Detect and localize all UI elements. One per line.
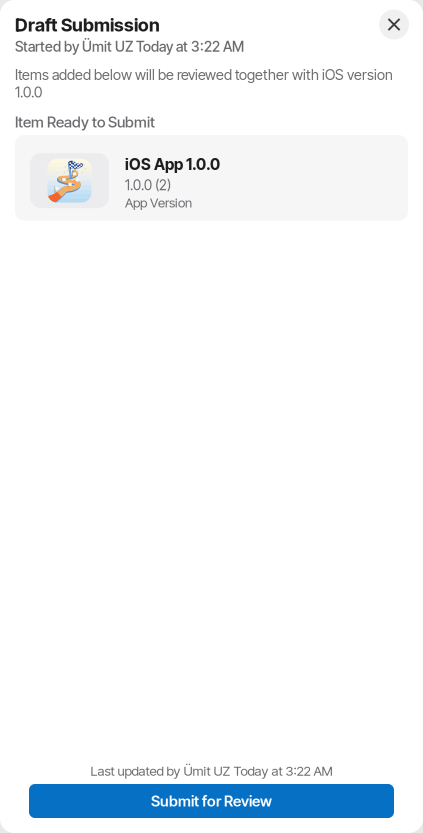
staticText: Draft Submission: [15, 14, 160, 36]
staticText: 1.0.0 (2): [125, 177, 171, 194]
staticText: Last updated by Ümit UZ Today at 3:22 AM: [90, 763, 332, 779]
staticText: Item Ready to Submit: [15, 113, 155, 131]
button[interactable]: Close: [379, 14, 409, 44]
staticText: Items added below will be reviewed toget…: [15, 66, 393, 101]
button[interactable]: Submit for Review: [29, 784, 394, 818]
staticText: Started by Ümit UZ Today at 3:22 AM: [15, 38, 244, 55]
staticText: App Version: [125, 195, 192, 211]
staticText: Submit for Review: [151, 792, 272, 810]
staticText: iOS App 1.0.0: [125, 155, 220, 174]
